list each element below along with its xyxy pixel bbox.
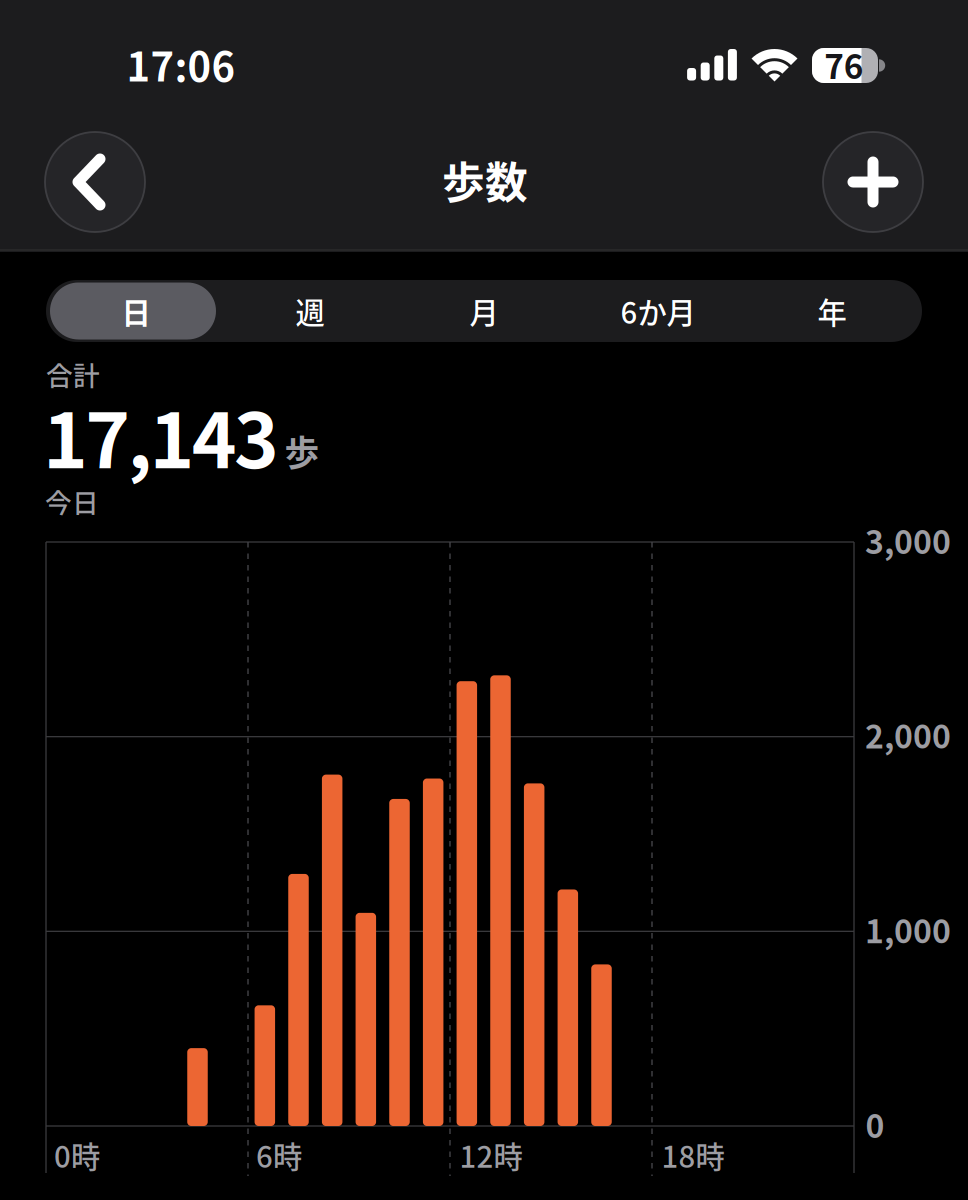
button[interactable]: Back	[45, 132, 145, 232]
staticText: 0時	[54, 1134, 100, 1176]
button[interactable]: 月	[401, 285, 567, 336]
staticText: 年	[817, 290, 846, 332]
staticText: 今日	[45, 482, 99, 520]
staticText: 日	[121, 290, 150, 332]
staticText: 月	[469, 290, 498, 332]
staticText: 18時	[661, 1134, 724, 1176]
staticText: 0	[865, 1101, 884, 1147]
staticText: 週	[295, 290, 324, 332]
staticText: 6か月	[620, 290, 695, 332]
staticText: 17:06	[126, 35, 235, 93]
staticText: 6時	[256, 1134, 302, 1176]
staticText: 17,143	[43, 380, 279, 490]
button[interactable]: 週	[227, 285, 393, 336]
staticText: 76	[824, 40, 864, 89]
staticText: 2,000	[865, 711, 951, 758]
staticText: 歩数	[442, 149, 528, 211]
button[interactable]: 6か月	[575, 285, 741, 336]
staticText: 3,000	[865, 517, 951, 563]
staticText: 12時	[459, 1134, 522, 1176]
button[interactable]: Add data	[823, 132, 923, 232]
staticText: 歩	[284, 426, 319, 476]
button[interactable]: 年	[749, 285, 915, 336]
button[interactable]: 日	[53, 285, 219, 336]
staticText: 合計	[46, 355, 100, 393]
staticText: 1,000	[865, 906, 951, 952]
